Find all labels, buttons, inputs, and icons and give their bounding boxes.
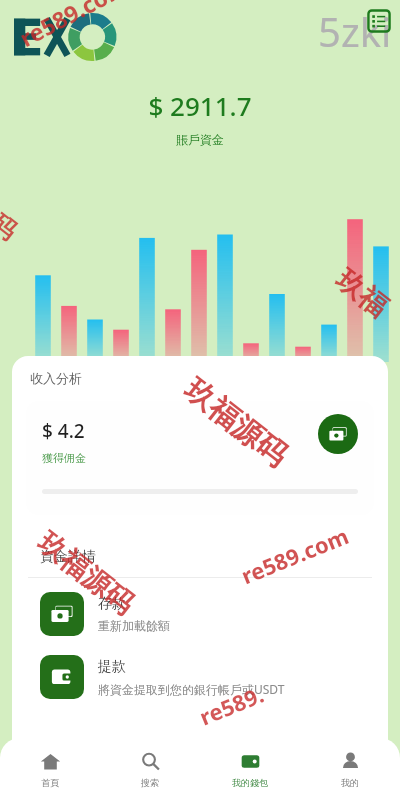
other: Withdraw (40, 655, 84, 699)
staticText: re589. (195, 678, 268, 731)
staticText: 搜索 (141, 777, 159, 788)
staticText: 存款 (98, 595, 126, 613)
button[interactable]: 我的錢包 (200, 738, 300, 800)
button[interactable]: 我的 (300, 738, 400, 800)
staticText: 提款 (98, 658, 126, 676)
staticText: 玖福源码 (177, 371, 295, 475)
staticText: $ 2911.7 (148, 88, 252, 123)
button[interactable]: $ 4.2 (26, 401, 374, 515)
staticText: 码 (0, 208, 23, 246)
staticText: 將資金提取到您的銀行帳戶或USDT (98, 681, 285, 697)
button[interactable]: EXO (14, 10, 164, 64)
button[interactable]: Commission (318, 414, 358, 454)
staticText: $ 4.2 (42, 418, 85, 444)
button[interactable]: 首頁 (0, 738, 100, 800)
staticText: 玖福 (329, 262, 395, 325)
staticText: re589.com (236, 520, 353, 590)
staticText: 獲得佣金 (42, 451, 86, 465)
staticText: 收入分析 (30, 370, 82, 386)
staticText: 我的 (341, 777, 359, 788)
staticText: 我的錢包 (232, 777, 268, 788)
staticText: 5zki (318, 4, 392, 58)
button[interactable]: Records (367, 9, 391, 33)
staticText: 資金詳情 (40, 548, 96, 566)
staticText: 重新加載餘額 (98, 618, 170, 633)
staticText: 首頁 (41, 777, 59, 788)
button[interactable]: 搜索 (100, 738, 200, 800)
other: Deposit (40, 592, 84, 636)
staticText: 賬戶資金 (176, 132, 224, 147)
button[interactable]: Withdraw (12, 652, 388, 702)
staticText: re589.com (14, 0, 133, 53)
button[interactable]: Deposit (12, 589, 388, 639)
staticText: 玖福源码 (31, 525, 141, 622)
